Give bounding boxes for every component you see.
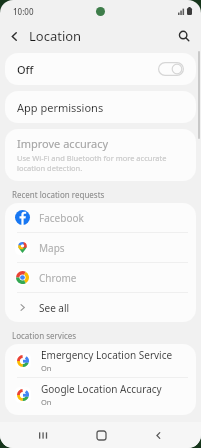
staticText: Location services <box>12 330 77 341</box>
button[interactable]: Search <box>173 25 195 47</box>
button[interactable]: Recents <box>29 422 57 448</box>
staticText: Recent location requests <box>12 189 105 200</box>
button[interactable]: Chrome <box>5 263 196 292</box>
staticText: See all <box>39 301 70 315</box>
button[interactable]: Location on or off <box>158 62 184 76</box>
button[interactable]: See all <box>5 293 196 322</box>
button[interactable]: Facebook <box>5 203 196 232</box>
staticText: Facebook <box>39 211 84 225</box>
button[interactable]: Google Location Accuracy <box>5 378 196 411</box>
button[interactable]: Home <box>87 422 115 448</box>
button[interactable]: Improve accuracy <box>5 129 196 181</box>
staticText: 10:00 <box>13 6 34 17</box>
staticText: Location <box>29 27 82 45</box>
staticText: On <box>41 363 52 373</box>
staticText: Use Wi-Fi and Bluetooth for more accurat… <box>17 153 182 173</box>
button[interactable]: Off <box>5 53 196 85</box>
staticText: App permissions <box>17 100 104 115</box>
staticText: Improve accuracy <box>17 136 109 151</box>
staticText: Maps <box>39 241 65 255</box>
button[interactable]: Maps <box>5 233 196 262</box>
staticText: On <box>41 397 52 407</box>
button[interactable]: App permissions <box>5 91 196 123</box>
staticText: Off <box>17 62 34 77</box>
staticText: Emergency Location Service <box>41 348 173 362</box>
staticText: Chrome <box>39 271 77 285</box>
button[interactable]: Emergency Location Service <box>5 344 196 377</box>
button[interactable]: Back <box>144 422 172 448</box>
button[interactable]: Back <box>2 24 26 48</box>
staticText: Google Location Accuracy <box>41 382 162 396</box>
